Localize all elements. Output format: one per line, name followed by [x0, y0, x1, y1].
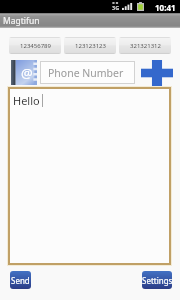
button[interactable]: Contacts — [11, 60, 37, 85]
button[interactable]: Phone Number — [40, 61, 135, 84]
button[interactable]: Add contact — [141, 60, 173, 86]
staticText: 10:41 — [155, 2, 176, 13]
button[interactable]: Settings — [142, 271, 172, 289]
button[interactable]: 123456789 — [9, 37, 61, 54]
button[interactable]: 123123123 — [64, 37, 116, 54]
staticText: Settings — [142, 275, 172, 286]
button[interactable]: 321321312 — [119, 37, 171, 54]
button[interactable]: Hello — [8, 87, 171, 265]
button[interactable]: Send — [10, 271, 31, 289]
staticText: 3G — [112, 4, 119, 11]
staticText: @ — [21, 64, 33, 82]
staticText: Hello — [13, 93, 40, 108]
staticText: 123456789 — [20, 42, 51, 50]
staticText: Send — [11, 275, 30, 286]
staticText: 123123123 — [75, 42, 106, 50]
staticText: 321321312 — [130, 42, 161, 50]
staticText: Phone Number — [48, 66, 124, 80]
staticText: Magtifun — [3, 15, 40, 27]
